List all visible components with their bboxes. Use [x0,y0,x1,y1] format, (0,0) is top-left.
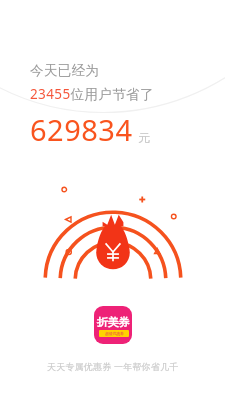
staticText: 629834 [30,110,133,149]
staticText: 超值优惠券 [105,331,124,336]
staticText: 天天专属优惠券 一年帮你省几千 [47,360,179,372]
staticText: 23455位用户节省了 [30,85,155,103]
staticText: 今天已经为 [30,62,100,79]
staticText: 折美券 [97,315,130,329]
button[interactable]: 折美券 App [94,306,132,344]
staticText: 元 [138,130,150,145]
